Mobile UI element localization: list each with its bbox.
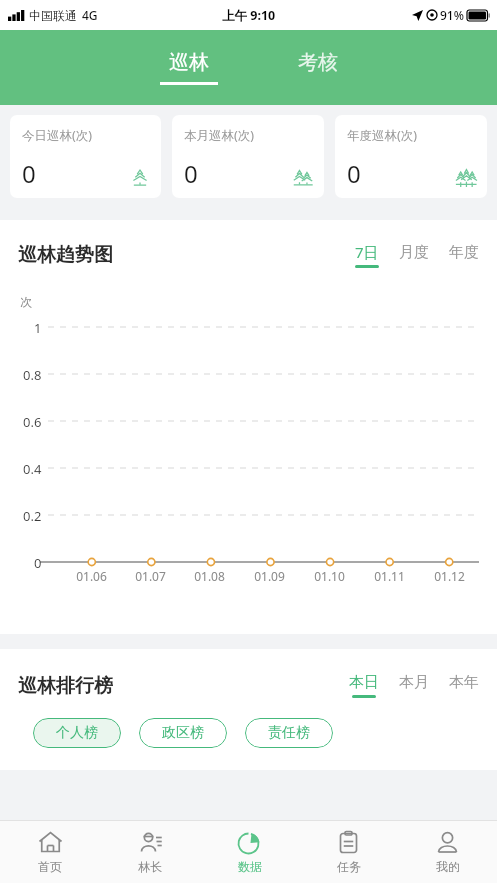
staticText: 01.09 [254,568,285,584]
staticText: 上午 9:10 [222,7,276,24]
button[interactable]: 月度 [397,241,431,270]
button[interactable]: 本月巡林(次) [172,115,324,198]
staticText: 本月 [399,673,429,692]
staticText: 林长 [138,859,162,874]
staticText: 月度 [399,243,429,262]
button[interactable]: 责任榜 [245,718,333,748]
button[interactable]: 我的 [398,821,497,883]
staticText: 01.06 [76,568,107,584]
staticText: 本月巡林(次) [184,127,255,144]
button[interactable]: 7日 [353,240,381,270]
staticText: 巡林 [169,50,209,75]
button[interactable]: 考核 [288,46,348,89]
staticText: 任务 [337,859,361,874]
staticText: 年度巡林(次) [347,127,418,144]
button[interactable]: 林长 [100,821,200,883]
staticText: 0 [22,157,36,190]
staticText: 0.8 [23,366,42,384]
button[interactable]: 个人榜 [33,718,121,748]
staticText: 巡林趋势图 [18,243,113,267]
button[interactable]: 数据 [200,821,299,883]
staticText: 本年 [449,673,479,692]
staticText: 01.07 [135,568,166,584]
staticText: 首页 [38,859,62,874]
staticText: 政区榜 [162,724,204,742]
button[interactable]: 本日 [347,671,381,700]
staticText: 年度 [449,243,479,262]
staticText: 4G [82,7,98,23]
staticText: 1 [34,319,42,337]
button[interactable]: 年度巡林(次) [335,115,487,198]
button[interactable]: 首页 [0,821,100,883]
staticText: 0.4 [23,460,42,478]
staticText: 0 [347,157,361,190]
staticText: 我的 [436,859,460,874]
staticText: 次 [20,294,32,309]
staticText: 01.10 [314,568,345,584]
staticText: 个人榜 [56,724,98,742]
staticText: 01.12 [434,568,465,584]
staticText: 0.6 [23,413,42,431]
staticText: 今日巡林(次) [22,127,93,144]
button[interactable]: 本月 [397,671,431,700]
staticText: 0.2 [23,507,42,525]
button[interactable]: 政区榜 [139,718,227,748]
staticText: 中国联通 [29,8,77,23]
staticText: 责任榜 [268,724,310,742]
staticText: 7日 [355,242,379,262]
staticText: 91% [440,7,464,23]
staticText: 考核 [298,50,338,75]
button[interactable]: 任务 [299,821,398,883]
button[interactable]: 巡林 [150,46,228,89]
staticText: 0 [184,157,198,190]
button[interactable]: 年度 [447,241,481,270]
staticText: 0 [34,554,42,572]
staticText: 01.08 [194,568,225,584]
staticText: 本日 [349,673,379,692]
staticText: 巡林排行榜 [18,674,113,698]
staticText: 01.11 [374,568,405,584]
button[interactable]: 本年 [447,671,481,700]
button[interactable]: 今日巡林(次) [10,115,161,198]
staticText: 数据 [238,859,262,874]
